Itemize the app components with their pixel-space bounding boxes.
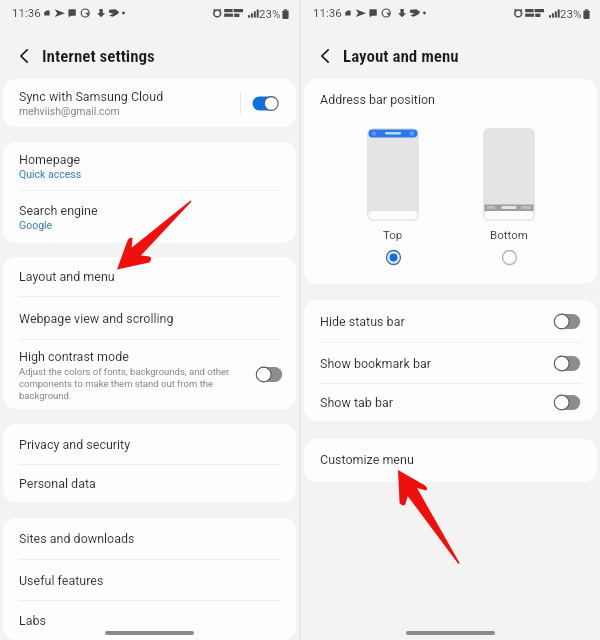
button[interactable]: Privacy and security	[3, 424, 296, 464]
staticText: Google	[19, 219, 53, 231]
staticText: Internet settings	[42, 46, 155, 66]
staticText: 23%	[259, 7, 281, 20]
staticText: Adjust the colors of fonts, backgrounds,…	[19, 366, 248, 401]
staticText: Sites and downloads	[19, 531, 135, 546]
staticText: mehviish@gmail.com	[19, 105, 120, 117]
staticText: Privacy and security	[19, 437, 131, 452]
staticText: Top	[383, 228, 403, 241]
button[interactable]: Search engine	[3, 191, 296, 243]
button[interactable]: Layout and menu	[3, 257, 296, 296]
button[interactable]: Personal data	[3, 465, 296, 502]
button[interactable]: Top	[367, 128, 419, 221]
button[interactable]: Homepage	[3, 142, 296, 190]
staticText: Sync with Samsung Cloud	[19, 89, 164, 104]
staticText: Search engine	[19, 203, 98, 218]
staticText: Useful features	[19, 573, 104, 588]
button[interactable]: Labs	[3, 601, 296, 640]
button[interactable]: Webpage view and scrolling	[3, 297, 296, 339]
staticText: Layout and menu	[19, 269, 115, 284]
staticText: High contrast mode	[19, 349, 129, 364]
staticText: Layout and menu	[343, 46, 459, 66]
staticText: Hide status bar	[320, 314, 554, 329]
staticText: Address bar position	[320, 92, 435, 107]
staticText: Show tab bar	[320, 395, 554, 410]
button[interactable]: Navigate up	[6, 38, 42, 74]
button[interactable]: Sites and downloads	[3, 518, 296, 559]
button[interactable]: Customize menu	[304, 439, 597, 479]
button[interactable]: Sync with Samsung Cloud	[3, 79, 296, 127]
staticText: Personal data	[19, 476, 96, 491]
button[interactable]: Show bookmark bar	[304, 343, 597, 383]
staticText: Homepage	[19, 152, 81, 167]
button[interactable]: High contrast mode	[3, 340, 296, 409]
staticText: 11:36	[313, 6, 342, 19]
staticText: Customize menu	[320, 452, 414, 467]
button[interactable]: Useful features	[3, 560, 296, 600]
button[interactable]: Navigate up	[307, 38, 343, 74]
button[interactable]: Bottom	[483, 128, 535, 221]
button[interactable]: Bottom	[499, 247, 519, 267]
staticText: Labs	[19, 613, 47, 628]
staticText: 11:36	[12, 6, 41, 19]
button[interactable]: Top	[383, 247, 403, 267]
button[interactable]: Hide status bar	[304, 300, 597, 342]
staticText: Webpage view and scrolling	[19, 311, 174, 326]
staticText: Show bookmark bar	[320, 356, 554, 371]
button[interactable]: Show tab bar	[304, 384, 597, 421]
staticText: 23%	[560, 7, 582, 20]
staticText: Bottom	[490, 228, 528, 241]
staticText: Quick access	[19, 168, 82, 180]
